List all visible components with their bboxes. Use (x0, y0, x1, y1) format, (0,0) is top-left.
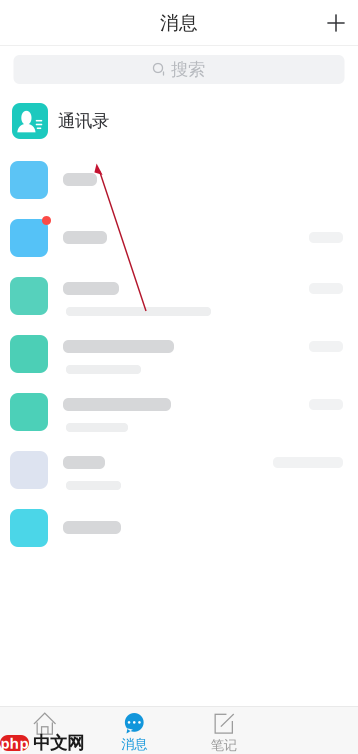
staticText: 中文网 (33, 732, 84, 754)
button[interactable]: Messages (89, 706, 179, 754)
staticText: 消息 (121, 736, 147, 752)
staticText: php (0, 733, 28, 753)
button[interactable] (0, 325, 358, 383)
button[interactable]: Home (0, 706, 89, 754)
staticText: 消息 (160, 11, 198, 34)
button[interactable]: Notes (179, 706, 268, 754)
staticText: 搜索 (171, 59, 205, 80)
button[interactable] (0, 441, 358, 499)
button[interactable] (0, 209, 358, 267)
button[interactable]: New (314, 1, 358, 45)
button[interactable] (0, 383, 358, 441)
button[interactable] (0, 499, 358, 557)
staticText (43, 737, 46, 754)
button[interactable]: 通讯录 (0, 93, 358, 151)
button[interactable] (0, 267, 358, 325)
button[interactable] (0, 151, 358, 209)
staticText: 通讯录 (58, 110, 109, 132)
button[interactable]: 搜索 (13, 55, 344, 84)
staticText: 笔记 (211, 737, 237, 753)
